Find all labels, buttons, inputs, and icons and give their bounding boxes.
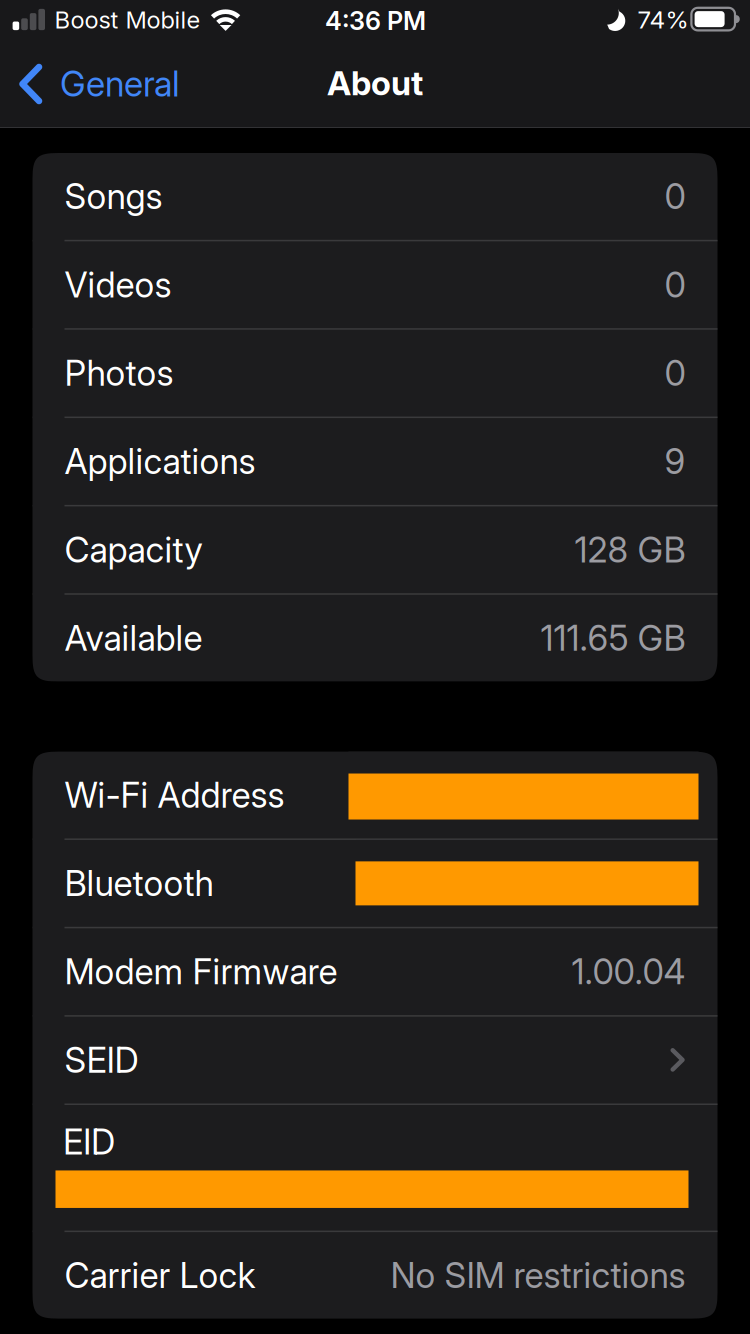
staticText: 0 xyxy=(664,175,685,217)
staticText: 9 xyxy=(664,440,685,482)
button[interactable]: General xyxy=(0,42,260,126)
staticText: 128 GB xyxy=(574,529,685,571)
button[interactable]: Available xyxy=(32,595,717,682)
staticText: 74% xyxy=(638,5,689,34)
staticText: About xyxy=(327,63,423,103)
button[interactable]: Bluetooth xyxy=(32,840,717,927)
button[interactable]: Photos xyxy=(32,330,717,416)
staticText: Available xyxy=(64,617,202,659)
staticText: Bluetooth xyxy=(64,862,213,904)
staticText: No SIM restrictions xyxy=(390,1254,685,1296)
staticText: SEID xyxy=(64,1039,138,1081)
staticText: General xyxy=(60,63,180,105)
staticText: Wi-Fi Address xyxy=(64,774,284,816)
button[interactable]: Carrier Lock xyxy=(32,1232,717,1319)
staticText: EID xyxy=(63,1121,115,1163)
staticText: Photos xyxy=(64,352,173,394)
button[interactable]: Capacity xyxy=(32,506,717,593)
staticText: 0 xyxy=(664,352,685,394)
staticText: Boost Mobile xyxy=(55,5,201,34)
button[interactable]: Applications xyxy=(32,418,717,505)
staticText: 1.00.04 xyxy=(571,951,685,993)
staticText: Carrier Lock xyxy=(64,1254,255,1296)
staticText: Capacity xyxy=(64,529,202,571)
staticText: Songs xyxy=(64,175,162,217)
staticText: 4:36 PM xyxy=(325,5,426,36)
staticText: Applications xyxy=(64,440,255,482)
staticText: 111.65 GB xyxy=(540,617,685,659)
button[interactable]: Songs xyxy=(32,153,717,240)
button[interactable]: EID xyxy=(32,1105,717,1231)
button[interactable]: Wi-Fi Address xyxy=(32,752,717,838)
staticText: 0 xyxy=(664,264,685,306)
staticText: Modem Firmware xyxy=(64,951,337,993)
button[interactable]: Modem Firmware xyxy=(32,928,717,1015)
button[interactable]: SEID xyxy=(32,1017,717,1103)
staticText: Videos xyxy=(64,264,171,306)
button[interactable]: Videos xyxy=(32,241,717,328)
